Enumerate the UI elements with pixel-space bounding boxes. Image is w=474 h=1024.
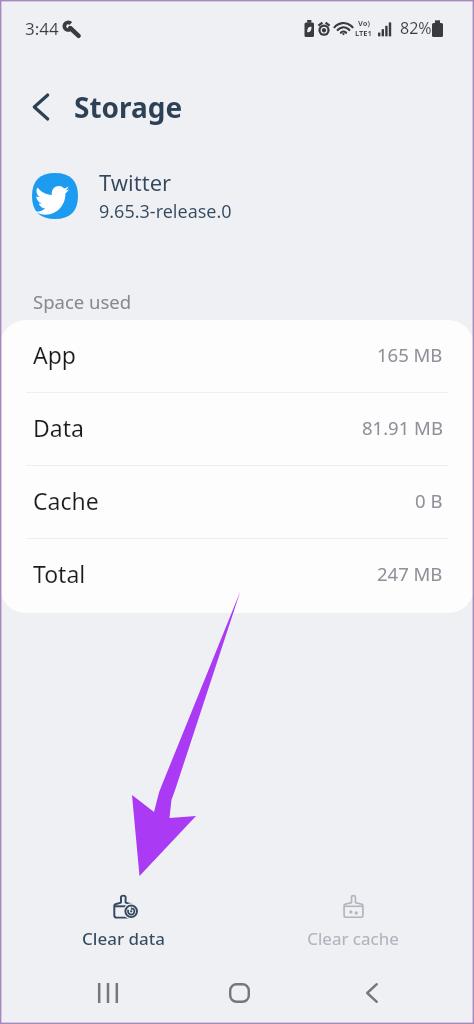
staticText: 0 B — [415, 488, 443, 513]
staticText: Twitter — [99, 167, 172, 197]
staticText: Cache — [33, 485, 99, 516]
button[interactable]: Home — [215, 962, 264, 1024]
staticText: Clear cache — [307, 927, 399, 950]
button[interactable]: Back — [20, 86, 62, 128]
button[interactable]: Clear data — [48, 886, 198, 952]
staticText: 247 MB — [377, 561, 443, 586]
button[interactable]: App — [0, 320, 474, 393]
button[interactable]: Total — [0, 539, 474, 612]
staticText: App — [33, 339, 76, 370]
staticText: Data — [33, 412, 84, 443]
staticText: Storage — [74, 88, 183, 126]
staticText: 82% — [400, 17, 432, 39]
button[interactable]: Cache — [0, 466, 474, 539]
staticText: 165 MB — [377, 342, 443, 367]
button[interactable]: Data — [0, 393, 474, 466]
staticText: Vo) — [358, 18, 370, 28]
staticText: LTE1 — [355, 28, 372, 38]
staticText: 81.91 MB — [362, 415, 443, 440]
button[interactable]: Back — [347, 962, 396, 1024]
staticText: 9.65.3-release.0 — [99, 199, 232, 224]
staticText: Space used — [33, 289, 132, 314]
staticText: Clear data — [82, 927, 165, 950]
staticText: 3:44 — [25, 17, 59, 40]
button[interactable]: Recent apps — [83, 962, 132, 1024]
button[interactable]: Clear cache — [278, 886, 428, 952]
staticText: Total — [33, 558, 86, 589]
